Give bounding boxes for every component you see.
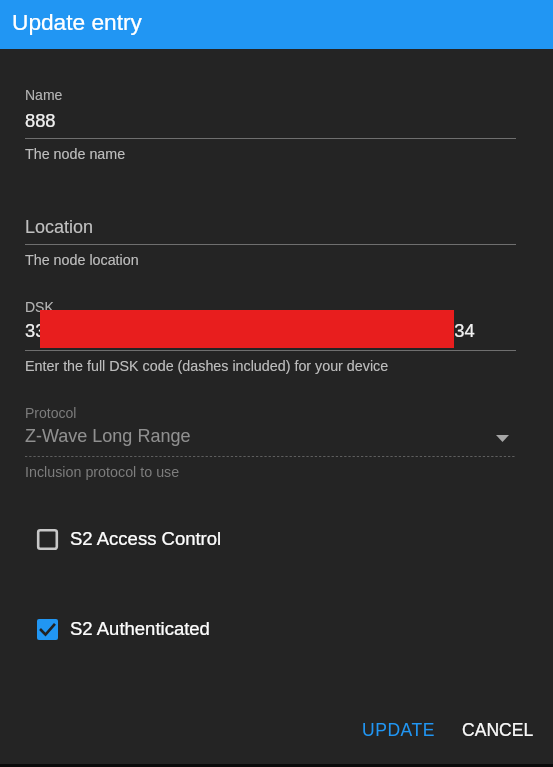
staticText: S2 Access Control <box>70 528 222 549</box>
staticText: The node name <box>25 146 126 162</box>
button[interactable]: S2 Access Control <box>25 520 325 558</box>
staticText: DSK <box>25 299 54 315</box>
button[interactable]: Location field <box>25 210 516 246</box>
staticText: Location <box>25 217 94 237</box>
button[interactable]: UPDATE <box>362 720 435 740</box>
staticText: 33333-12345-12345-12345-12345-12345-1234… <box>25 320 475 340</box>
button[interactable]: Protocol, Z-Wave Long Range <box>25 400 516 458</box>
button[interactable]: DSK field <box>25 294 516 352</box>
button[interactable]: Open protocol dropdown <box>490 426 515 451</box>
staticText: Name <box>25 87 63 103</box>
button[interactable]: CANCEL <box>462 720 534 740</box>
staticText: Update entry <box>12 9 142 34</box>
staticText: Enter the full DSK code (dashes included… <box>25 358 389 374</box>
staticText: The node location <box>25 252 139 268</box>
staticText: CANCEL <box>462 720 534 740</box>
staticText: Protocol <box>25 405 77 421</box>
staticText: UPDATE <box>362 720 435 740</box>
staticText: Inclusion protocol to use <box>25 464 180 480</box>
button[interactable]: Name field <box>25 82 516 140</box>
staticText: Z-Wave Long Range <box>25 426 191 446</box>
button[interactable]: S2 Authenticated <box>25 610 325 648</box>
staticText: 888 <box>25 110 56 130</box>
staticText: S2 Authenticated <box>70 618 210 639</box>
